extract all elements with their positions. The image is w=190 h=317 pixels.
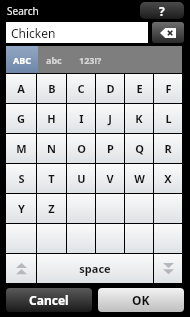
staticText: D (106, 81, 115, 96)
button[interactable]: L (154, 104, 182, 133)
button[interactable] (96, 224, 124, 253)
button[interactable]: G (6, 104, 36, 133)
staticText: Cancel (29, 292, 69, 308)
staticText: L (165, 111, 172, 126)
staticText: A (17, 81, 25, 96)
staticText: N (47, 141, 56, 156)
button[interactable]: X (154, 164, 182, 193)
button[interactable] (125, 224, 153, 253)
button[interactable]: Z (37, 194, 66, 223)
staticText: Search (7, 4, 39, 18)
button[interactable]: Cancel (6, 288, 92, 312)
button[interactable]: O (67, 134, 95, 163)
staticText: B (48, 81, 56, 96)
button[interactable]: Page up (6, 254, 36, 283)
button[interactable] (154, 224, 182, 253)
staticText: P (107, 141, 114, 156)
staticText: space (79, 261, 111, 276)
staticText: abc (46, 54, 62, 66)
button[interactable]: T (37, 164, 66, 193)
button[interactable]: Y (6, 194, 36, 223)
staticText: I (79, 111, 84, 126)
button[interactable]: U (67, 164, 95, 193)
button[interactable] (67, 194, 95, 223)
staticText: Chicken (11, 25, 56, 41)
staticText: G (17, 111, 25, 126)
staticText: H (47, 111, 56, 126)
button[interactable]: A (6, 74, 36, 103)
button[interactable]: N (37, 134, 66, 163)
staticText: ? (159, 3, 165, 19)
button[interactable]: Help (140, 2, 184, 19)
button[interactable]: Backspace (152, 22, 184, 43)
button[interactable] (125, 194, 153, 223)
button[interactable]: J (96, 104, 124, 133)
staticText: X (164, 171, 172, 186)
button[interactable]: D (96, 74, 124, 103)
staticText: S (18, 171, 25, 186)
button[interactable]: 123!? (69, 46, 111, 73)
staticText: F (165, 81, 172, 96)
staticText: J (108, 111, 112, 126)
button[interactable]: M (6, 134, 36, 163)
staticText: Q (135, 141, 144, 156)
button[interactable]: Page down (154, 254, 182, 283)
staticText: O (77, 141, 86, 156)
button[interactable]: H (37, 104, 66, 133)
staticText: U (77, 171, 86, 186)
button[interactable]: E (125, 74, 153, 103)
button[interactable] (67, 224, 95, 253)
button[interactable]: K (125, 104, 153, 133)
button[interactable] (154, 194, 182, 223)
staticText: E (136, 81, 143, 96)
button[interactable]: OK (98, 288, 184, 312)
button[interactable]: S (6, 164, 36, 193)
staticText: Y (18, 201, 25, 216)
staticText: V (106, 171, 114, 186)
button[interactable]: P (96, 134, 124, 163)
staticText: Z (48, 201, 55, 216)
button[interactable]: W (125, 164, 153, 193)
button[interactable]: Q (125, 134, 153, 163)
staticText: R (164, 141, 172, 156)
button[interactable]: B (37, 74, 66, 103)
staticText: T (48, 171, 55, 186)
button[interactable]: Chicken (6, 22, 148, 43)
staticText: 123!? (79, 54, 102, 66)
button[interactable]: R (154, 134, 182, 163)
button[interactable]: I (67, 104, 95, 133)
staticText: M (16, 141, 27, 156)
staticText: C (77, 81, 85, 96)
button[interactable]: ABC (6, 46, 38, 73)
staticText: K (135, 111, 143, 126)
button[interactable]: C (67, 74, 95, 103)
button[interactable]: V (96, 164, 124, 193)
button[interactable]: abc (38, 46, 69, 73)
button[interactable] (6, 224, 36, 253)
button[interactable] (37, 224, 66, 253)
button[interactable]: space (37, 254, 153, 283)
button[interactable] (96, 194, 124, 223)
button[interactable]: F (154, 74, 182, 103)
staticText: W (134, 171, 145, 186)
staticText: ABC (13, 54, 31, 66)
staticText: OK (132, 292, 150, 308)
